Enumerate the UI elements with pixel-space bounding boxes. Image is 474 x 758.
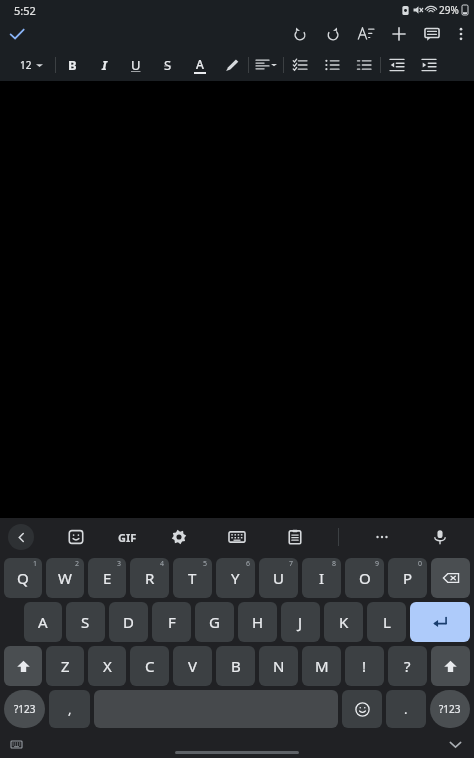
staticText: 3: [117, 559, 122, 569]
staticText: ?123: [439, 702, 461, 716]
button[interactable]: Y: [216, 558, 255, 598]
button[interactable]: Bulleted list: [316, 48, 348, 81]
button[interactable]: Numbered list: [348, 48, 380, 81]
button[interactable]: Z: [46, 646, 84, 686]
button[interactable]: W: [46, 558, 84, 598]
button[interactable]: Emoji: [342, 690, 382, 728]
button[interactable]: Alignment: [249, 48, 283, 81]
button[interactable]: Enter: [410, 602, 470, 642]
staticText: Z: [61, 656, 70, 676]
button[interactable]: Hide keyboard: [444, 733, 466, 755]
staticText: H: [252, 612, 264, 632]
staticText: 4: [160, 559, 165, 569]
button[interactable]: Stickers: [61, 522, 91, 552]
button[interactable]: Q: [4, 558, 42, 598]
staticText: 1: [33, 559, 38, 569]
button[interactable]: O: [345, 558, 384, 598]
staticText: X: [103, 656, 112, 676]
button[interactable]: Increase indent: [413, 48, 445, 81]
staticText: E: [103, 568, 112, 588]
button[interactable]: V: [173, 646, 212, 686]
button[interactable]: I: [302, 558, 341, 598]
button[interactable]: Add: [382, 20, 415, 48]
staticText: !: [362, 656, 367, 676]
staticText: A: [38, 612, 48, 632]
staticText: B: [68, 56, 77, 74]
button[interactable]: Backspace: [431, 558, 470, 598]
button[interactable]: B: [216, 646, 255, 686]
button[interactable]: Redo: [316, 20, 349, 48]
button[interactable]: Switch keyboard: [6, 734, 26, 754]
staticText: R: [145, 568, 155, 588]
staticText: GIF: [118, 530, 137, 545]
button[interactable]: Undo: [283, 20, 316, 48]
button[interactable]: Comma: [49, 690, 90, 728]
staticText: 8: [332, 559, 337, 569]
button[interactable]: A: [24, 602, 62, 642]
button[interactable]: Text color: [184, 48, 216, 81]
button[interactable]: ?123: [4, 690, 45, 728]
button[interactable]: More: [367, 522, 397, 552]
button[interactable]: N: [259, 646, 298, 686]
button[interactable]: C: [130, 646, 169, 686]
button[interactable]: K: [324, 602, 363, 642]
button[interactable]: Strikethrough: [152, 48, 184, 81]
button[interactable]: 12: [20, 58, 43, 72]
button[interactable]: T: [173, 558, 212, 598]
staticText: S: [164, 56, 172, 74]
button[interactable]: X: [88, 646, 126, 686]
staticText: U: [131, 56, 141, 74]
staticText: L: [383, 612, 391, 632]
button[interactable]: Settings: [164, 522, 194, 552]
button[interactable]: D: [109, 602, 148, 642]
button[interactable]: GIF: [118, 530, 137, 545]
staticText: 9: [375, 559, 380, 569]
button[interactable]: Shift: [4, 646, 42, 686]
button[interactable]: Underline: [120, 48, 152, 81]
button[interactable]: Checklist: [284, 48, 316, 81]
button[interactable]: H: [238, 602, 277, 642]
button[interactable]: Period: [386, 690, 426, 728]
button[interactable]: Italic: [88, 48, 120, 81]
staticText: F: [168, 612, 176, 632]
staticText: 2: [75, 559, 80, 569]
button[interactable]: ?123: [430, 690, 470, 728]
button[interactable]: P: [388, 558, 427, 598]
staticText: 7: [289, 559, 294, 569]
button[interactable]: E: [88, 558, 126, 598]
button[interactable]: Back: [8, 524, 34, 550]
button[interactable]: One handed: [222, 522, 252, 552]
button[interactable]: Decrease indent: [381, 48, 413, 81]
button[interactable]: J: [281, 602, 320, 642]
button[interactable]: !: [345, 646, 384, 686]
button[interactable]: Format: [349, 20, 382, 48]
button[interactable]: Comment: [415, 20, 448, 48]
staticText: P: [403, 568, 413, 588]
button[interactable]: Bold: [56, 48, 88, 81]
button[interactable]: Clipboard: [280, 522, 310, 552]
staticText: A: [196, 56, 204, 72]
button[interactable]: Done: [0, 20, 34, 48]
staticText: ?: [404, 656, 411, 676]
button[interactable]: U: [259, 558, 298, 598]
button[interactable]: ?: [388, 646, 427, 686]
button[interactable]: G: [195, 602, 234, 642]
button[interactable]: More options: [448, 20, 474, 48]
staticText: T: [188, 568, 197, 588]
button[interactable]: Shift: [431, 646, 470, 686]
button[interactable]: Voice input: [425, 522, 455, 552]
staticText: C: [145, 656, 155, 676]
button[interactable]: R: [130, 558, 169, 598]
button[interactable]: F: [152, 602, 191, 642]
staticText: Q: [17, 568, 29, 588]
button[interactable]: S: [66, 602, 105, 642]
staticText: K: [339, 612, 349, 632]
staticText: I: [319, 568, 325, 588]
staticText: W: [58, 568, 72, 588]
staticText: O: [359, 568, 371, 588]
button[interactable]: Highlight: [216, 48, 248, 81]
button[interactable]: M: [302, 646, 341, 686]
button[interactable]: L: [367, 602, 406, 642]
staticText: 29%: [439, 3, 459, 17]
